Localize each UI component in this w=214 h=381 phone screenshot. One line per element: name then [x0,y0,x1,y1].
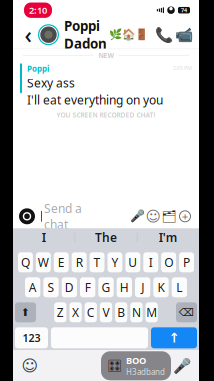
staticText: 🌿🏠🚪 [108,29,147,41]
button[interactable]: G [98,277,114,297]
staticText: G [101,279,110,295]
button[interactable]: Camera [19,208,35,224]
staticText: NEW [98,51,113,60]
staticText: 🎛 [107,359,122,373]
button[interactable]: Q [18,252,33,272]
staticText: Y [111,254,118,270]
staticText: O [164,254,173,270]
button[interactable]: Poppi Dadon [64,17,147,52]
staticText: L [176,279,182,295]
staticText: K [157,279,164,295]
button[interactable]: I [13,226,75,248]
staticText: Z [57,304,64,320]
button[interactable]: 123 [15,327,48,348]
button[interactable]: Video call [174,24,194,46]
staticText: D [65,279,74,295]
button[interactable]: The [75,226,137,248]
staticText: I [42,229,46,245]
staticText: 🎤 [173,357,191,374]
staticText: X [72,304,79,320]
button[interactable]: Cameo [161,208,177,224]
staticText: H [120,279,129,295]
button[interactable]: Dictation [171,355,193,377]
staticText: W [38,254,49,270]
staticText: N [132,304,141,320]
button[interactable]: J [135,277,150,297]
staticText: C [87,304,95,320]
staticText: Sexy ass [27,75,75,91]
staticText: Poppi Dadon [64,17,107,52]
staticText: 📹 [175,26,193,43]
staticText: 74 [181,7,187,14]
button[interactable]: K [153,277,169,297]
button[interactable]: D [62,277,77,297]
button[interactable]: F [80,277,95,297]
staticText: U [128,254,137,270]
button[interactable]: Voice call [154,24,174,46]
staticText: J [141,279,144,295]
button[interactable]: X [69,302,82,322]
button[interactable]: Shift [15,302,36,322]
button[interactable]: B [115,302,127,322]
staticText: 2:10 [29,4,47,16]
staticText: ↑ [168,330,179,345]
staticText: T [94,254,101,270]
staticText: I [149,254,153,270]
button[interactable]: V [100,302,112,322]
staticText: F [85,279,91,295]
button[interactable]: U [125,252,140,272]
button[interactable]: I [143,252,158,272]
staticText: + [182,209,188,223]
staticText: H3adband [126,367,165,377]
staticText: ⌫ [179,306,194,318]
staticText: ‹ [24,20,31,50]
staticText: BOO [126,354,146,367]
button[interactable]: R [72,252,87,272]
button[interactable]: Voice note [129,208,145,224]
button[interactable]: T [90,252,104,272]
staticText: 🗂 [161,209,176,223]
staticText: V [102,304,109,320]
button[interactable]: W [36,252,51,272]
button[interactable]: Send [151,327,197,348]
button[interactable]: O [161,252,176,272]
staticText: YOU SCREEN RECORDED CHAT! [56,110,155,119]
button[interactable]: L [172,277,187,297]
staticText: I'll eat everything on you [27,92,163,108]
staticText: Q [21,254,30,270]
button[interactable]: A [25,277,40,297]
button[interactable]: Z [54,302,66,322]
staticText: 123 [22,331,40,345]
staticText: P [183,254,190,270]
staticText: Poppi [27,63,49,74]
button[interactable]: H [117,277,132,297]
staticText: M [146,304,157,320]
staticText: ☺ [145,208,160,225]
button[interactable]: Space [51,327,148,348]
button[interactable]: S [43,277,59,297]
staticText: Send a chat [44,200,82,232]
staticText: A [29,279,37,295]
staticText: 🎤 [129,209,144,223]
button[interactable]: Y [107,252,122,272]
button[interactable]: C [85,302,97,322]
staticText: R [76,254,83,270]
button[interactable]: N [130,302,142,322]
staticText: I'm [159,229,178,245]
button[interactable]: Back [18,22,38,48]
button[interactable]: Delete [176,302,197,322]
button[interactable]: E [54,252,69,272]
staticText: ☺ [21,357,38,375]
staticText: B [117,304,125,320]
staticText: E [58,254,65,270]
button[interactable]: M [146,302,158,322]
staticText: ⬆ [21,306,30,318]
button[interactable]: More options [177,208,193,224]
button[interactable]: P [179,252,194,272]
button[interactable]: Profile [38,24,59,45]
button[interactable]: Stickers [145,208,161,224]
staticText: The [95,229,117,245]
button[interactable]: I'm [137,226,199,248]
button[interactable]: Emoji keyboard [19,355,41,377]
staticText: S [47,279,54,295]
